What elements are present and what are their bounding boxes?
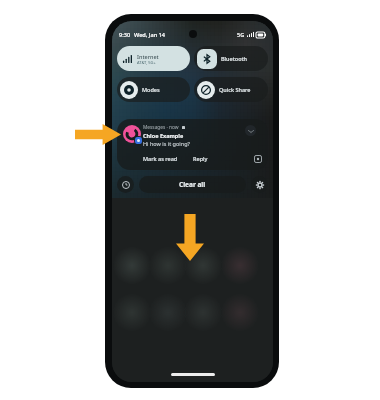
staticText: Clear all — [179, 180, 206, 189]
staticText: 5G — [237, 31, 245, 38]
button[interactable]: Reply — [193, 155, 208, 162]
staticText: Internet — [137, 53, 159, 60]
button[interactable]: Bluetooth — [194, 46, 268, 71]
staticText: Messages · now — [143, 124, 179, 131]
button[interactable]: Messages · now — [117, 119, 268, 170]
other: Arrow pointing at notification — [75, 124, 121, 145]
button[interactable]: Modes — [117, 77, 190, 102]
button[interactable]: Notification history — [117, 176, 134, 193]
staticText: Quick Share — [219, 86, 251, 93]
staticText: Wed, Jan 14 — [134, 31, 165, 39]
button[interactable]: Mark as read — [143, 155, 178, 162]
staticText: 9:30 — [119, 31, 131, 39]
staticText: Hi how is it going? — [143, 140, 190, 147]
button[interactable]: Open in app — [252, 153, 263, 164]
button[interactable]: Settings — [251, 176, 268, 193]
button[interactable]: Quick Share — [194, 77, 268, 102]
button[interactable]: Clear all — [139, 176, 246, 193]
staticText: Modes — [142, 86, 160, 93]
button[interactable]: Expand notification — [245, 125, 256, 136]
other: Swipe down arrow — [176, 214, 204, 261]
staticText: Chloe Example — [143, 132, 184, 139]
button[interactable]: Internet — [117, 46, 190, 71]
staticText: AT&T, 5G+ — [137, 60, 156, 65]
staticText: Bluetooth — [221, 55, 248, 62]
